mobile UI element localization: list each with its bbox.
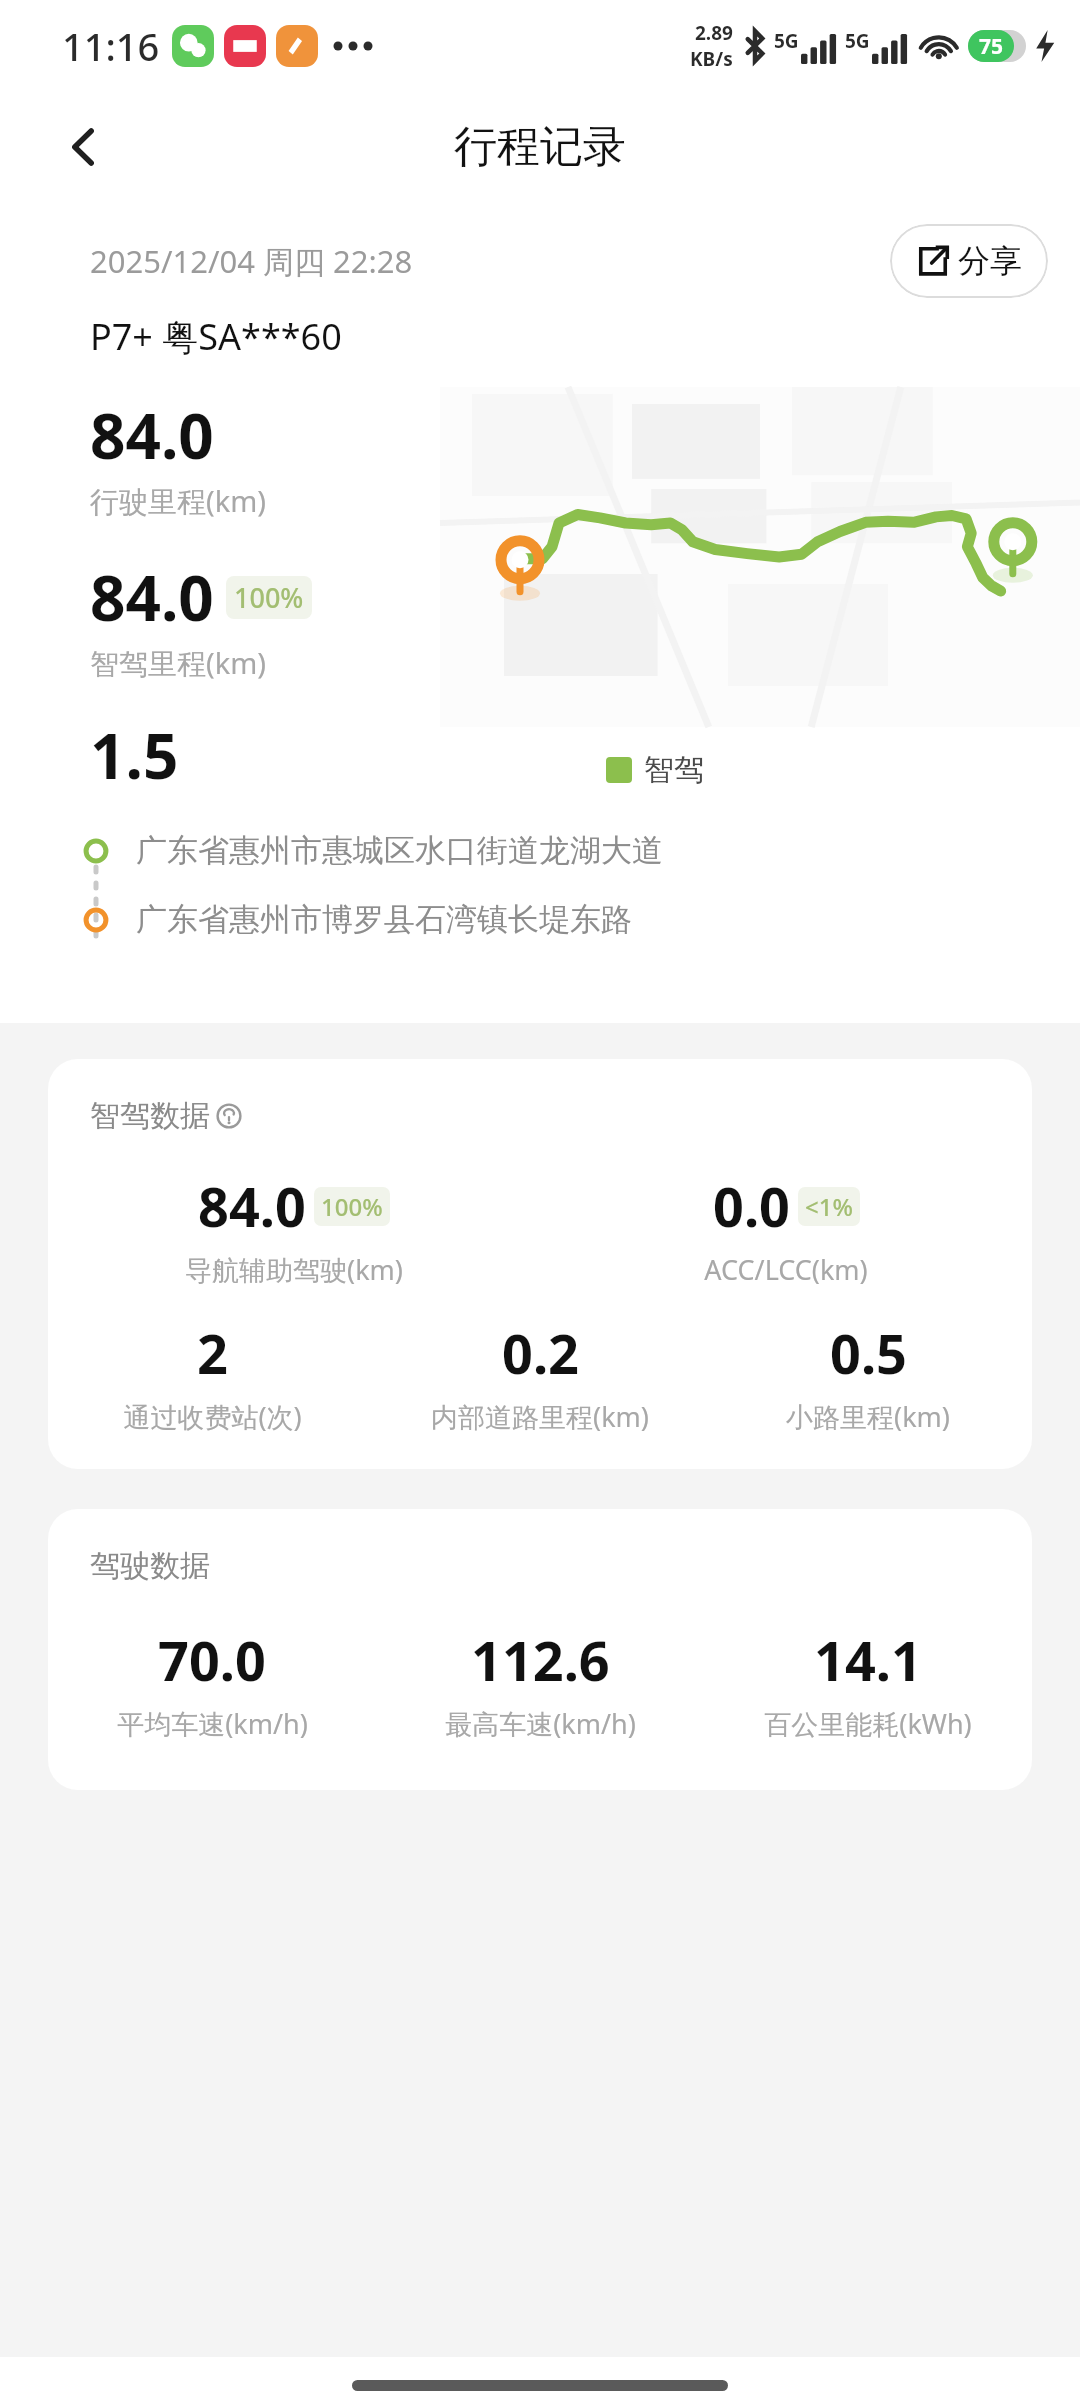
staticText: 5G (774, 28, 799, 54)
staticText: KB/s (690, 46, 733, 72)
button[interactable]: Back (42, 105, 126, 189)
staticText: <1% (805, 1190, 853, 1223)
button[interactable]: 智驾数据 (48, 1059, 1032, 1469)
staticText: 5G (845, 28, 870, 54)
staticText: 11:16 (62, 20, 160, 72)
staticText: 导航辅助驾驶(km) (185, 1251, 403, 1288)
staticText: 2025/12/04 周四 22:28 (90, 240, 413, 282)
staticText: 行程记录 (454, 120, 626, 174)
staticText: 广东省惠州市博罗县石湾镇长堤东路 (136, 900, 632, 939)
staticText: 内部道路里程(km) (431, 1398, 649, 1435)
staticText: 小路里程(km) (786, 1398, 950, 1435)
staticText: 行驶里程(km) (90, 481, 267, 521)
staticText: 2.89 (695, 20, 733, 46)
staticText: 1.5 (90, 713, 179, 797)
staticText: 84.0 (90, 555, 214, 639)
staticText: 75 (979, 32, 1004, 61)
staticText: 百公里能耗(kWh) (764, 1705, 972, 1742)
staticText: 广东省惠州市惠城区水口街道龙湖大道 (136, 831, 663, 870)
staticText: P7+ 粤SA***60 (90, 312, 342, 361)
staticText: 2 (197, 1316, 228, 1390)
staticText: 0.5 (830, 1316, 907, 1390)
staticText: 70.0 (158, 1623, 266, 1697)
button[interactable]: 分享 (890, 224, 1048, 298)
staticText: 100% (234, 579, 304, 616)
staticText: 智驾数据 (90, 1097, 210, 1135)
staticText: ACC/LCC(km) (704, 1251, 868, 1288)
staticText: 通过收费站(次) (123, 1398, 302, 1435)
staticText: 14.1 (814, 1623, 922, 1697)
staticText: 分享 (958, 241, 1022, 281)
staticText: 驾驶数据 (90, 1547, 210, 1585)
staticText: 0.2 (502, 1316, 579, 1390)
staticText: 智驾里程(km) (90, 643, 267, 683)
staticText: 100% (321, 1190, 383, 1223)
staticText: 112.6 (471, 1623, 610, 1697)
staticText: 0.0 (713, 1169, 790, 1243)
staticText: 84.0 (90, 393, 214, 477)
staticText: 智驾 (644, 751, 704, 789)
staticText: 平均车速(km/h) (117, 1705, 308, 1742)
button[interactable]: 驾驶数据 (48, 1509, 1032, 1790)
staticText: 最高车速(km/h) (445, 1705, 636, 1742)
staticText: 84.0 (198, 1169, 306, 1243)
